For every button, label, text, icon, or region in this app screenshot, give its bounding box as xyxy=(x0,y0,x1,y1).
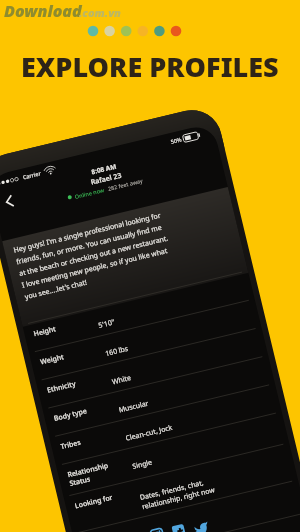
button[interactable]: Explore Profiles promo screenshot xyxy=(0,0,300,532)
